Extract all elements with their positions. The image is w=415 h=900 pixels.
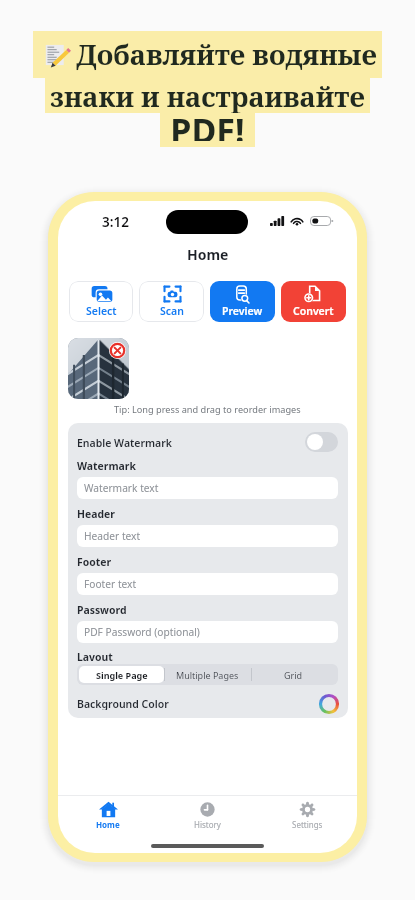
- staticText: Multiple Pages: [176, 669, 239, 681]
- staticText: Header: [77, 507, 115, 518]
- button[interactable]: Settings: [257, 801, 357, 835]
- staticText: Background Color: [77, 697, 169, 710]
- staticText: Watermark text: [84, 481, 159, 495]
- button[interactable]: Grid: [250, 666, 336, 683]
- staticText: Footer: [77, 555, 112, 566]
- staticText: Home: [96, 819, 120, 830]
- staticText: Footer text: [84, 577, 137, 591]
- staticText: Layout: [77, 650, 113, 661]
- staticText: знаки и настраивайте: [50, 78, 365, 113]
- staticText: Header text: [84, 529, 141, 543]
- staticText: Home: [187, 245, 229, 263]
- button[interactable]: Header text: [77, 525, 338, 547]
- staticText: Password: [77, 603, 127, 614]
- staticText: Convert: [293, 304, 334, 318]
- button[interactable]: Enable Watermark toggle: [305, 432, 338, 452]
- button[interactable]: [68, 338, 129, 399]
- button[interactable]: Multiple Pages: [164, 666, 250, 683]
- button[interactable]: Select: [69, 281, 133, 322]
- staticText: PDF!: [170, 107, 245, 141]
- staticText: Select: [86, 304, 117, 318]
- button[interactable]: Scan: [139, 281, 204, 322]
- staticText: Enable Watermark: [77, 436, 172, 449]
- staticText: History: [194, 819, 221, 830]
- button[interactable]: Preview: [210, 281, 275, 322]
- staticText: Добавляйте водяные: [76, 36, 377, 73]
- staticText: PDF Password (optional): [84, 625, 200, 639]
- button[interactable]: History: [157, 801, 257, 835]
- button[interactable]: Convert: [281, 281, 346, 322]
- staticText: Scan: [160, 304, 184, 318]
- staticText: Preview: [222, 304, 263, 318]
- button[interactable]: Footer text: [77, 573, 338, 595]
- button[interactable]: Home: [58, 801, 157, 835]
- button[interactable]: Watermark text: [77, 477, 338, 499]
- staticText: 3:12: [102, 213, 129, 231]
- button[interactable]: Pick background colour: [319, 694, 339, 714]
- staticText: Tip: Long press and drag to reorder imag…: [114, 403, 301, 416]
- staticText: Single Page: [96, 669, 148, 681]
- staticText: Grid: [284, 669, 303, 681]
- button[interactable]: PDF Password (optional): [77, 621, 338, 643]
- staticText: Settings: [292, 819, 323, 830]
- staticText: Watermark: [77, 459, 136, 470]
- button[interactable]: Remove image: [109, 342, 126, 359]
- button[interactable]: Single Page: [79, 666, 164, 683]
